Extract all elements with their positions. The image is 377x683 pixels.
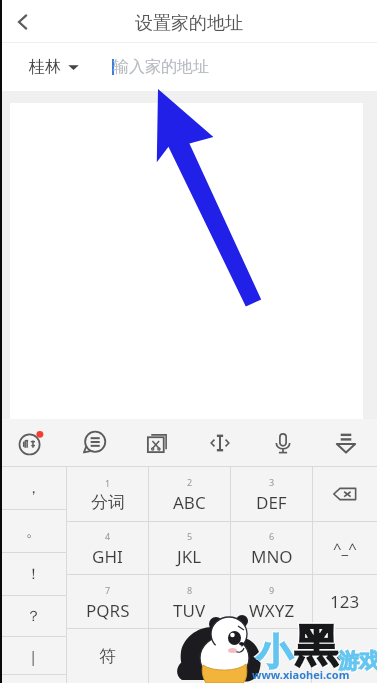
staticText: ， — [26, 479, 41, 498]
staticText: 分词 — [91, 492, 125, 513]
staticText: JKL — [177, 545, 202, 568]
button[interactable]: Input method — [0, 419, 62, 467]
staticText: 小 — [257, 630, 293, 675]
staticText: 设置家的地址 — [135, 12, 243, 35]
button[interactable]: 3 — [231, 467, 312, 521]
staticText: GHI — [92, 545, 123, 568]
staticText: 123 — [330, 590, 360, 613]
button[interactable]: Phrases — [62, 419, 125, 467]
button[interactable]: Enter — [312, 629, 377, 683]
button[interactable]: 8 — [149, 575, 230, 628]
button[interactable]: 123 — [313, 575, 377, 628]
staticText: ！ — [26, 565, 41, 584]
button[interactable]: 7 — [67, 575, 148, 628]
staticText: WXYZ — [249, 599, 295, 622]
staticText: 桂林 — [29, 57, 61, 77]
staticText: www.xiaohei.com — [252, 667, 350, 682]
staticText: 游戏 — [337, 647, 377, 673]
button[interactable]: 4 — [67, 522, 148, 574]
button[interactable]: 。 — [0, 510, 66, 552]
button[interactable]: 桂林 — [0, 43, 95, 91]
staticText: ABC — [173, 491, 206, 514]
staticText: 小 — [256, 629, 292, 674]
staticText: 8 — [187, 584, 193, 596]
button[interactable]: 1 — [67, 467, 148, 521]
button[interactable]: | — [0, 637, 66, 674]
staticText: DEF — [256, 491, 287, 514]
button[interactable]: Space — [149, 629, 311, 683]
button[interactable]: 符 — [67, 629, 148, 683]
staticText: 4 — [105, 530, 111, 542]
staticText: 黑 — [295, 620, 339, 675]
staticText: TUV — [173, 599, 206, 622]
staticText: MNO — [251, 545, 293, 568]
button[interactable]: 2 — [149, 467, 230, 521]
staticText: | — [29, 646, 38, 666]
staticText: 。 — [26, 522, 41, 541]
staticText: 6 — [269, 530, 275, 542]
button[interactable]: 5 — [149, 522, 230, 574]
staticText: PQRS — [86, 599, 130, 622]
staticText: 2 — [187, 476, 193, 488]
staticText: 7 — [105, 584, 111, 596]
staticText: 小 — [255, 628, 291, 673]
button[interactable]: 6 — [231, 522, 312, 574]
staticText: 游戏 — [339, 649, 377, 675]
button[interactable]: 9 — [231, 575, 312, 628]
staticText: 黑 — [294, 619, 338, 674]
button[interactable]: Voice input — [251, 419, 314, 467]
staticText: 1 — [105, 477, 111, 489]
staticText: 3 — [269, 476, 275, 488]
staticText: ？ — [26, 607, 41, 626]
button[interactable]: ？ — [0, 596, 66, 636]
button[interactable]: Move cursor — [188, 419, 251, 467]
staticText: 9 — [269, 584, 275, 596]
button[interactable]: ！ — [0, 553, 66, 595]
staticText: 符 — [99, 646, 116, 667]
button[interactable]: Backspace — [313, 467, 377, 521]
staticText: 5 — [187, 530, 193, 542]
button[interactable]: Hide keyboard — [314, 419, 377, 467]
staticText: ^_^ — [333, 538, 357, 558]
button[interactable]: ^_^ — [313, 522, 377, 574]
button[interactable]: Back — [0, 0, 46, 43]
button[interactable]: ， — [0, 467, 66, 509]
button[interactable]: Clipboard — [125, 419, 188, 467]
staticText: 游戏 — [338, 648, 377, 674]
staticText: 输入家的地址 — [113, 57, 209, 77]
staticText: 黑 — [293, 618, 337, 673]
